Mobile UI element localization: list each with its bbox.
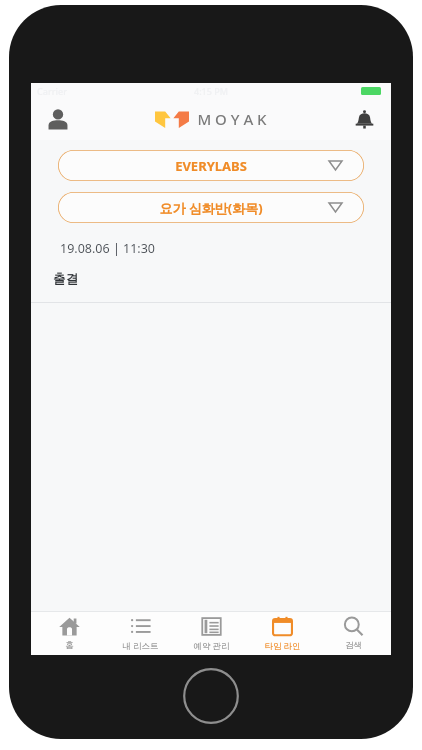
button[interactable]: 홈 bbox=[36, 616, 102, 651]
staticText: 출결 bbox=[53, 271, 78, 287]
button[interactable]: EVERYLABS bbox=[58, 150, 364, 181]
staticText: 검색 bbox=[345, 640, 362, 651]
staticText: EVERYLABS bbox=[175, 157, 247, 175]
button[interactable]: 예약 관리 bbox=[178, 616, 244, 652]
staticText: M O Y A K bbox=[197, 109, 267, 129]
button[interactable]: 내 리스트 bbox=[107, 616, 173, 652]
staticText: 요가 심화반(화목) bbox=[159, 199, 263, 217]
staticText: 19.08.06 | 11:30 bbox=[60, 240, 155, 257]
staticText: Carrier bbox=[37, 85, 67, 97]
button[interactable]: Notifications bbox=[347, 102, 381, 136]
button[interactable]: 타임 라인 bbox=[249, 616, 315, 652]
staticText: 타임 라인 bbox=[264, 640, 301, 652]
button[interactable]: 요가 심화반(화목) bbox=[58, 192, 364, 223]
staticText: 홈 bbox=[65, 640, 74, 651]
staticText: 예약 관리 bbox=[193, 640, 230, 652]
staticText: 내 리스트 bbox=[122, 640, 159, 652]
staticText: 4:15 PM bbox=[194, 85, 228, 97]
button[interactable]: 검색 bbox=[320, 616, 386, 651]
button[interactable]: Profile bbox=[41, 102, 75, 136]
